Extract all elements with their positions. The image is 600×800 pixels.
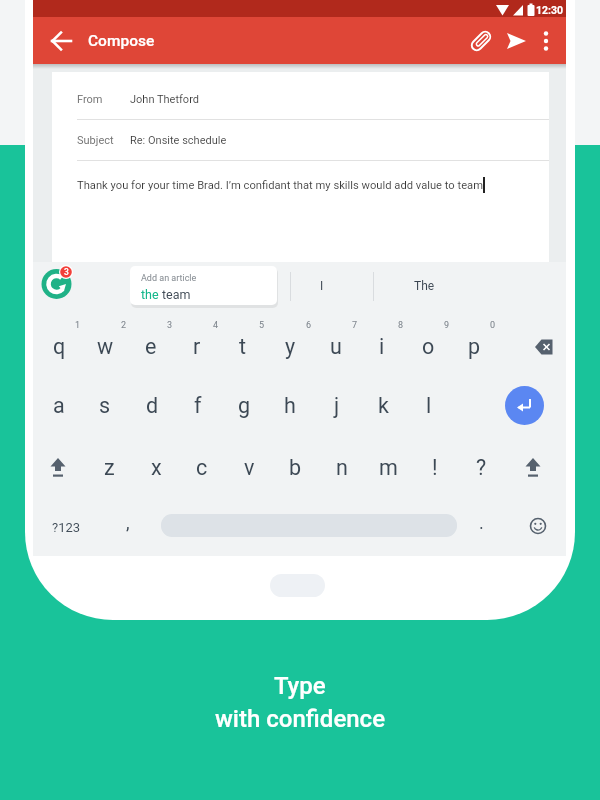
staticText: z: [104, 455, 115, 480]
staticText: l: [426, 393, 432, 418]
button[interactable]: q: [38, 323, 80, 369]
staticText: the: [141, 287, 162, 302]
button[interactable]: .: [460, 499, 502, 545]
staticText: 8: [398, 320, 404, 331]
staticText: 3: [64, 267, 69, 277]
staticText: Type: [274, 672, 326, 700]
button[interactable]: [33, 17, 566, 64]
button[interactable]: i: [361, 323, 403, 369]
staticText: ?: [476, 455, 487, 480]
button[interactable]: I: [232, 269, 412, 303]
staticText: 1: [75, 320, 81, 331]
button[interactable]: g: [223, 382, 265, 428]
staticText: I: [320, 279, 324, 293]
staticText: c: [196, 455, 208, 480]
staticText: s: [99, 393, 111, 418]
button[interactable]: j: [316, 382, 358, 428]
button[interactable]: [505, 386, 544, 425]
staticText: 2: [121, 320, 127, 331]
staticText: The: [414, 279, 435, 293]
button[interactable]: ,: [107, 499, 149, 545]
staticText: e: [145, 334, 157, 359]
staticText: p: [468, 334, 481, 359]
staticText: d: [146, 393, 159, 418]
button[interactable]: u: [315, 323, 357, 369]
staticText: g: [238, 393, 251, 418]
button[interactable]: r: [176, 323, 218, 369]
staticText: x: [151, 455, 162, 480]
button[interactable]: [130, 266, 277, 305]
staticText: 5: [259, 320, 265, 331]
button[interactable]: ?123: [45, 504, 87, 550]
button[interactable]: k: [362, 382, 404, 428]
button[interactable]: ?: [460, 444, 502, 490]
button[interactable]: l: [408, 382, 450, 428]
staticText: Add an article: [141, 273, 197, 284]
button[interactable]: w: [84, 323, 126, 369]
button[interactable]: m: [367, 444, 409, 490]
button[interactable]: f: [177, 382, 219, 428]
staticText: with confidence: [215, 705, 386, 733]
staticText: n: [336, 455, 348, 480]
staticText: t: [239, 334, 247, 359]
staticText: w: [97, 334, 114, 359]
staticText: q: [53, 334, 66, 359]
button[interactable]: !: [414, 444, 456, 490]
staticText: 7: [352, 320, 358, 331]
staticText: Thank you for your time Brad. I’m confid…: [77, 179, 486, 192]
button[interactable]: t: [222, 323, 264, 369]
button[interactable]: d: [131, 382, 173, 428]
button[interactable]: p: [453, 323, 495, 369]
staticText: team: [162, 287, 191, 302]
staticText: a: [53, 393, 65, 418]
button[interactable]: h: [269, 382, 311, 428]
staticText: f: [194, 393, 202, 418]
staticText: !: [432, 455, 438, 480]
button[interactable]: v: [228, 444, 270, 490]
button[interactable]: y: [269, 323, 311, 369]
staticText: 4: [213, 320, 219, 331]
staticText: i: [379, 334, 385, 359]
button[interactable]: The: [334, 269, 514, 303]
staticText: m: [379, 455, 398, 480]
button[interactable]: s: [84, 382, 126, 428]
staticText: b: [289, 455, 302, 480]
staticText: h: [284, 393, 296, 418]
staticText: o: [422, 334, 435, 359]
button[interactable]: o: [407, 323, 449, 369]
staticText: Re: Onsite schedule: [130, 134, 227, 147]
staticText: 9: [444, 320, 450, 331]
staticText: 3: [167, 320, 173, 331]
staticText: From: [77, 93, 103, 106]
staticText: Subject: [77, 134, 114, 147]
button[interactable]: c: [181, 444, 223, 490]
button[interactable]: x: [135, 444, 177, 490]
button[interactable]: b: [274, 444, 316, 490]
staticText: r: [193, 334, 201, 359]
staticText: k: [378, 393, 389, 418]
staticText: 12:30: [536, 4, 564, 16]
staticText: John Thetford: [130, 93, 199, 106]
button[interactable]: z: [88, 444, 130, 490]
staticText: j: [334, 393, 340, 418]
staticText: ?123: [52, 520, 81, 535]
staticText: 0: [490, 320, 496, 331]
button[interactable]: [270, 574, 325, 597]
button[interactable]: n: [321, 444, 363, 490]
staticText: .: [479, 512, 484, 533]
staticText: Compose: [88, 32, 155, 50]
button[interactable]: a: [38, 382, 80, 428]
staticText: y: [285, 334, 296, 359]
staticText: v: [244, 455, 255, 480]
staticText: ,: [126, 512, 130, 533]
staticText: u: [330, 334, 342, 359]
button[interactable]: e: [130, 323, 172, 369]
staticText: 6: [306, 320, 312, 331]
